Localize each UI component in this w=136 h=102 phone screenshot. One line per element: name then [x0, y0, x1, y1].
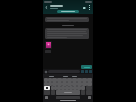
button[interactable]: Shift — [44, 86, 50, 90]
button[interactable]: Video call — [82, 5, 87, 10]
button[interactable] — [45, 17, 89, 22]
button[interactable] — [48, 82, 52, 86]
button[interactable] — [77, 78, 82, 82]
button[interactable] — [72, 82, 77, 86]
button[interactable] — [44, 78, 48, 82]
button[interactable] — [67, 78, 72, 82]
button[interactable] — [57, 10, 79, 13]
button[interactable] — [73, 86, 77, 90]
button[interactable] — [57, 86, 61, 90]
button[interactable] — [77, 82, 82, 86]
button[interactable] — [43, 74, 60, 78]
button[interactable]: Recents — [88, 96, 91, 99]
button[interactable]: More options — [87, 5, 92, 10]
button[interactable] — [87, 78, 92, 82]
button[interactable] — [72, 78, 77, 82]
button[interactable] — [57, 82, 62, 86]
button[interactable] — [54, 86, 57, 90]
button[interactable] — [81, 86, 85, 90]
button[interactable] — [52, 78, 57, 82]
button[interactable] — [82, 82, 87, 86]
button[interactable] — [69, 86, 73, 90]
button[interactable] — [57, 78, 62, 82]
button[interactable] — [67, 82, 72, 86]
button[interactable] — [52, 82, 57, 86]
button[interactable] — [77, 86, 81, 90]
button[interactable] — [48, 78, 52, 82]
button[interactable]: Back — [44, 5, 49, 10]
button[interactable] — [61, 86, 65, 90]
button[interactable] — [71, 74, 78, 78]
button[interactable] — [82, 78, 87, 82]
button[interactable] — [62, 82, 67, 86]
button[interactable]: Back — [45, 96, 48, 99]
button[interactable] — [45, 28, 89, 39]
button[interactable]: Space — [56, 90, 80, 95]
button[interactable] — [51, 86, 54, 90]
button[interactable]: Keyboard settings — [44, 70, 47, 73]
button[interactable] — [87, 82, 92, 86]
button[interactable] — [45, 41, 52, 49]
button[interactable] — [65, 86, 69, 90]
button[interactable]: Send — [81, 65, 92, 69]
button[interactable] — [62, 78, 67, 82]
button[interactable] — [44, 82, 48, 86]
button[interactable] — [60, 74, 71, 78]
